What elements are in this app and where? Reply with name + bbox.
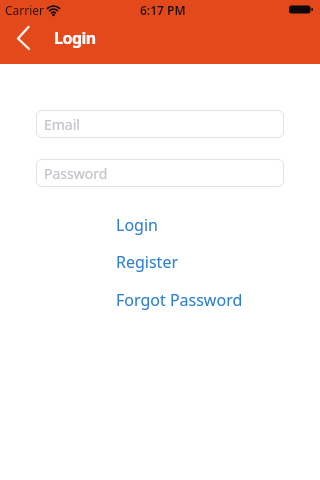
button[interactable]: Register	[116, 248, 179, 276]
staticText: Forgot Password	[116, 289, 243, 311]
button[interactable]: Login	[116, 211, 158, 239]
staticText: Login	[116, 214, 158, 236]
button[interactable]: Password	[36, 159, 284, 187]
staticText: 6:17 PM	[140, 2, 186, 18]
button[interactable]	[8, 24, 38, 52]
staticText: Password	[44, 164, 108, 183]
button[interactable]: Email	[36, 110, 284, 138]
button[interactable]: Forgot Password	[116, 286, 243, 314]
staticText: Register	[116, 251, 179, 273]
staticText: Carrier	[5, 2, 45, 18]
staticText: Email	[44, 115, 80, 134]
staticText: Login	[54, 27, 96, 49]
